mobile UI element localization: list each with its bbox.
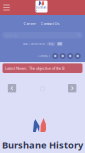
button[interactable]: LinkedIn [67,53,73,59]
staticText: Career [23,21,36,26]
staticText: burshane [35,6,47,13]
button[interactable]: Hindi [57,42,62,45]
staticText: Contact Us [40,21,59,26]
button[interactable]: Career [23,21,36,26]
button[interactable]: Burshane home [35,0,47,12]
button[interactable]: Next slide [68,84,76,92]
button[interactable]: Menu [0,0,12,15]
staticText: Burshane History [2,139,83,151]
staticText: CONNECT [38,54,50,58]
button[interactable]: YouTube [74,53,81,59]
button[interactable]: Latest News: The objective of the B [2,63,82,73]
staticText: SELECT LANGUAGE [23,42,45,45]
button[interactable]: English [47,42,55,46]
staticText: Latest News: The objective of the B [5,65,65,71]
button[interactable]: Facebook [52,53,58,59]
button[interactable]: Previous slide [8,84,16,92]
button[interactable]: Twitter [59,53,66,59]
button[interactable]: Contact Us [40,21,59,26]
staticText: Eng [48,42,53,45]
